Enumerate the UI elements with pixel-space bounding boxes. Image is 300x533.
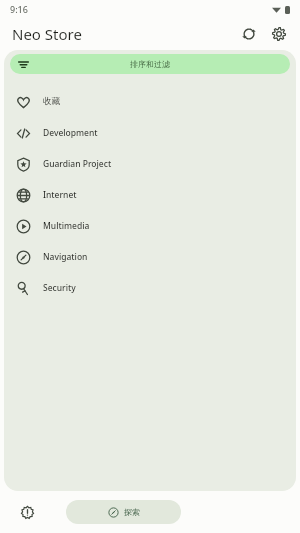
button[interactable]: Multimedia [4, 210, 296, 241]
button[interactable]: Latest updates [14, 499, 40, 525]
staticText: Development [43, 127, 98, 139]
staticText: 收藏 [43, 96, 60, 107]
button[interactable]: 探索 [66, 500, 181, 524]
staticText: Guardian Project [43, 158, 112, 170]
staticText: Navigation [43, 251, 88, 263]
staticText: Security [43, 282, 76, 294]
button[interactable]: Internet [4, 179, 296, 210]
button[interactable]: Sync repositories [236, 21, 262, 47]
staticText: Neo Store [12, 24, 82, 44]
button[interactable]: 收藏 [4, 86, 296, 117]
button[interactable]: 排序和过滤 [10, 54, 290, 74]
staticText: 探索 [124, 507, 140, 517]
button[interactable]: Settings [266, 21, 292, 47]
staticText: Internet [43, 189, 77, 201]
staticText: Multimedia [43, 220, 90, 232]
button[interactable]: Security [4, 272, 296, 303]
button[interactable]: Navigation [4, 241, 296, 272]
staticText: 9:16 [10, 3, 28, 15]
button[interactable]: Development [4, 117, 296, 148]
staticText: 排序和过滤 [130, 59, 170, 69]
button[interactable]: Guardian Project [4, 148, 296, 179]
